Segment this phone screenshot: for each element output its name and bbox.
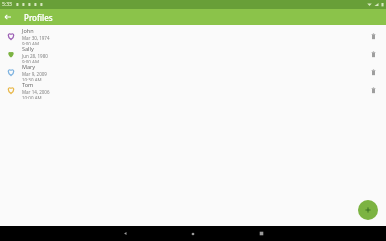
staticText: Tom xyxy=(22,81,34,88)
button[interactable]: Home xyxy=(173,226,213,241)
staticText: Mar 30, 1974 xyxy=(22,35,50,41)
button[interactable]: Sally xyxy=(0,45,386,63)
staticText: 10:30 AM xyxy=(22,77,42,81)
button[interactable]: John xyxy=(0,27,386,45)
button[interactable]: Add profile xyxy=(358,200,378,220)
staticText: Profiles xyxy=(24,12,53,23)
button[interactable]: Mary xyxy=(0,63,386,81)
button[interactable]: Back xyxy=(105,226,145,241)
staticText: 9:00 AM xyxy=(22,41,40,45)
staticText: Mary xyxy=(22,63,36,70)
staticText: Mar 14, 2006 xyxy=(22,89,50,95)
staticText: Mar 9, 2009 xyxy=(22,71,47,77)
button[interactable]: Recent apps xyxy=(241,226,281,241)
staticText: Sally xyxy=(22,45,34,52)
staticText: 9:00 AM xyxy=(22,59,40,63)
button[interactable]: Back xyxy=(0,9,16,25)
button[interactable]: Delete xyxy=(360,63,386,81)
button[interactable]: Delete xyxy=(360,81,386,99)
button[interactable]: Tom xyxy=(0,81,386,99)
staticText: Jun 28, 1980 xyxy=(22,53,48,59)
button[interactable]: Delete xyxy=(360,45,386,63)
staticText: 5:33 xyxy=(2,1,12,8)
staticText: John xyxy=(22,27,34,34)
button[interactable]: Delete xyxy=(360,27,386,45)
staticText: 10:00 AM xyxy=(22,95,42,99)
